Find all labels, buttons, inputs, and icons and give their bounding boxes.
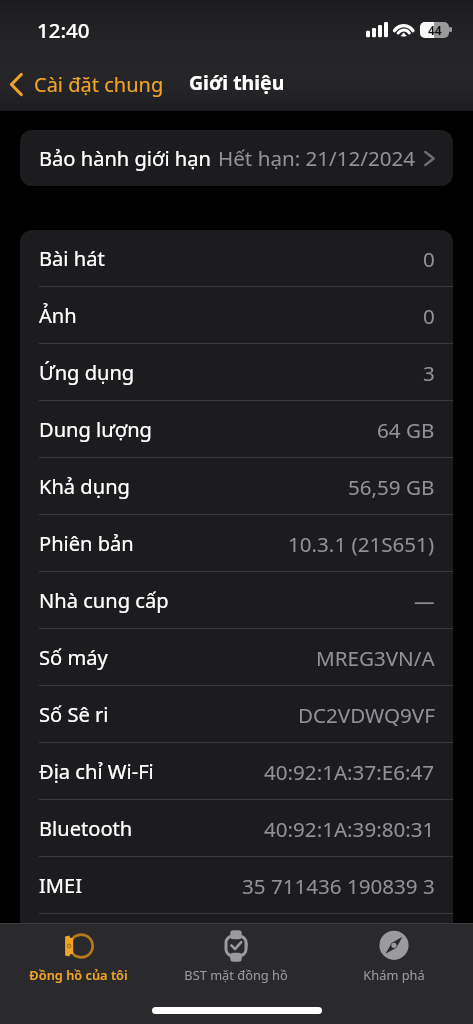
button[interactable]: Địa chỉ Wi‑Fi	[20, 743, 453, 800]
button[interactable]: Bài hát	[20, 230, 453, 287]
button[interactable]: Bảo hành giới hạn	[20, 130, 453, 186]
button[interactable]: Phiên bản	[20, 515, 453, 572]
staticText: Bluetooth	[39, 815, 133, 842]
staticText: Giới thiệu	[189, 69, 285, 96]
staticText: DC2VDWQ9VF	[298, 701, 435, 729]
staticText: 10.3.1 (21S651)	[288, 530, 435, 558]
staticText: 8936048112345678	[246, 929, 435, 957]
other: BST mặt đồng hồ	[220, 931, 252, 961]
button[interactable]: Ảnh	[20, 287, 453, 344]
button[interactable]: Đồng hồ của tôi	[0, 931, 157, 985]
staticText: Khả dụng	[39, 473, 130, 500]
staticText: Địa chỉ Wi‑Fi	[39, 758, 154, 785]
staticText: Bài hát	[39, 245, 105, 272]
button[interactable]: ICCID	[20, 914, 453, 971]
staticText: 35 711436 190839 3	[242, 872, 435, 900]
staticText: 40:92:1A:37:E6:47	[264, 758, 435, 786]
staticText: Bảo hành giới hạn	[39, 145, 211, 172]
staticText: —	[414, 587, 435, 615]
button[interactable]: IMEI	[20, 857, 453, 914]
staticText: Nhà cung cấp	[39, 587, 169, 614]
other: Khám phá	[378, 931, 410, 961]
staticText: BST mặt đồng hồ	[184, 966, 288, 983]
button[interactable]: Nhà cung cấp	[20, 572, 453, 629]
staticText: 3	[423, 359, 435, 387]
button[interactable]: Khả dụng	[20, 458, 453, 515]
staticText: 64 GB	[377, 416, 435, 444]
staticText: 56,59 GB	[348, 473, 435, 501]
staticText: 0	[423, 245, 435, 273]
button[interactable]: Cài đặt chung	[8, 69, 164, 99]
button[interactable]: BST mặt đồng hồ	[157, 931, 315, 985]
staticText: Khám phá	[363, 966, 425, 983]
staticText: 0	[423, 302, 435, 330]
staticText: 44	[428, 22, 442, 38]
button[interactable]: Bluetooth	[20, 800, 453, 857]
staticText: 40:92:1A:39:80:31	[264, 815, 435, 843]
button[interactable]: Số máy	[20, 629, 453, 686]
button[interactable]: Khám phá	[315, 931, 473, 985]
other: Đồng hồ của tôi	[63, 931, 95, 961]
button[interactable]: Ứng dụng	[20, 344, 453, 401]
staticText: Phiên bản	[39, 530, 134, 557]
staticText: IMEI	[39, 872, 83, 899]
staticText: Ứng dụng	[39, 359, 135, 386]
staticText: Hết hạn: 21/12/2024	[218, 144, 416, 172]
staticText: ICCID	[39, 929, 93, 956]
staticText: 12:40	[37, 16, 90, 44]
staticText: Số máy	[39, 644, 108, 671]
staticText: Dung lượng	[39, 416, 152, 443]
button[interactable]: Số Sê ri	[20, 686, 453, 743]
staticText: Ảnh	[39, 302, 77, 329]
button[interactable]: Dung lượng	[20, 401, 453, 458]
staticText: MREG3VN/A	[316, 644, 435, 672]
staticText: Cài đặt chung	[34, 71, 164, 98]
staticText: Số Sê ri	[39, 701, 109, 728]
staticText: Đồng hồ của tôi	[29, 966, 128, 983]
